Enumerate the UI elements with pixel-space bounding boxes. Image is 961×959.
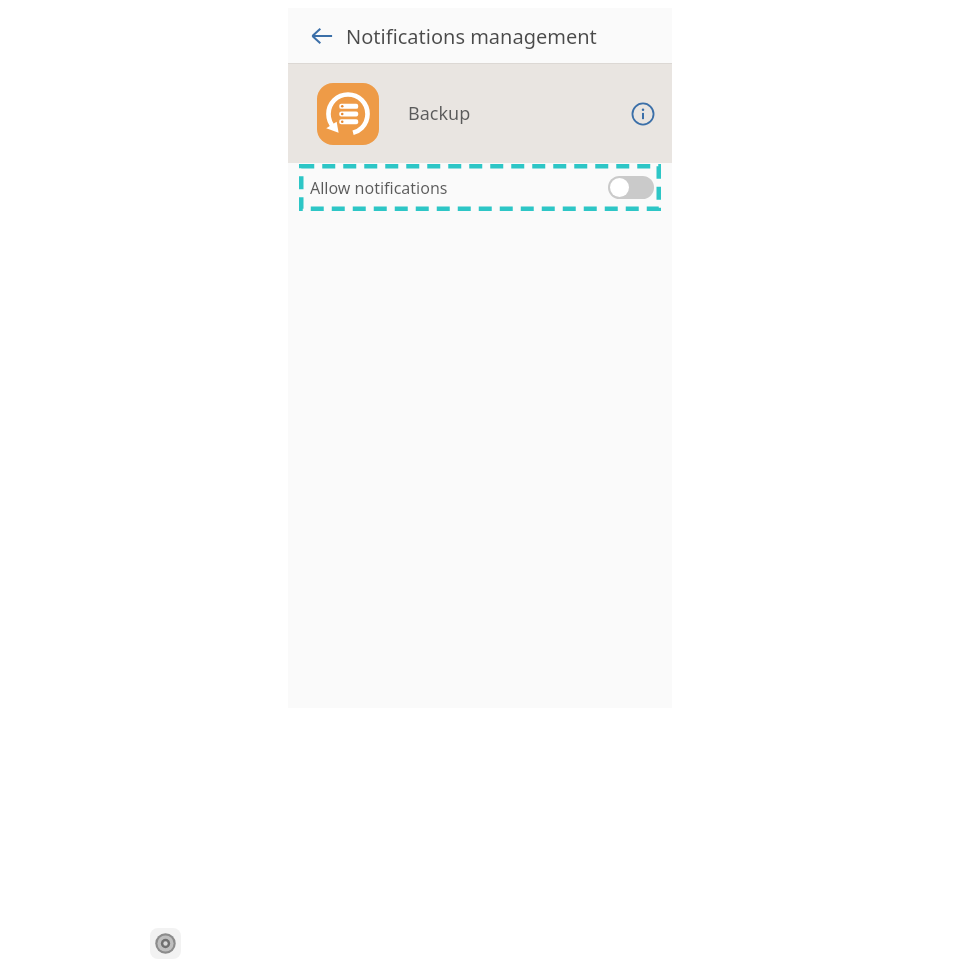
button[interactable]: Allow notifications	[288, 163, 672, 212]
button[interactable]: Back	[302, 16, 342, 56]
button[interactable]: Backup	[288, 64, 672, 163]
button[interactable]: Allow notifications toggle	[608, 176, 654, 199]
staticText: Backup	[408, 101, 471, 126]
staticText: Allow notifications	[310, 177, 448, 199]
button[interactable]: App info	[621, 92, 665, 136]
button[interactable]: Focus indicator	[150, 928, 181, 959]
staticText: Notifications management	[346, 23, 597, 50]
